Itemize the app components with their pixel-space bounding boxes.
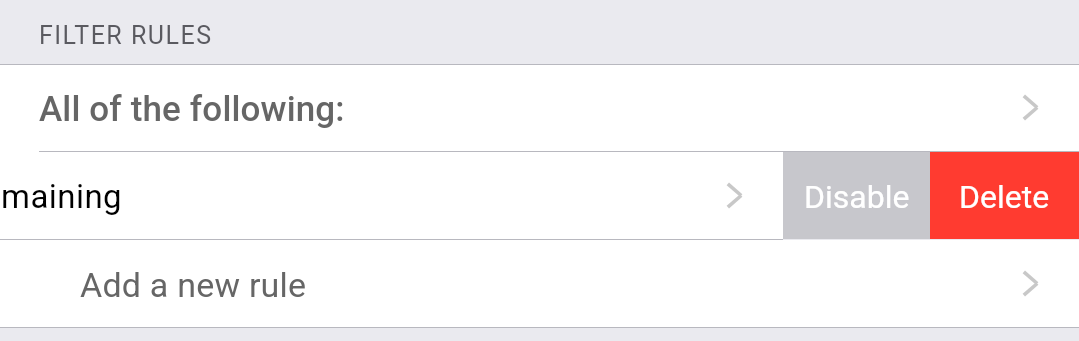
button[interactable]: Add a new rule: [0, 240, 1079, 327]
staticText: maining: [1, 177, 123, 216]
button[interactable]: maining: [0, 152, 783, 239]
staticText: Disable: [804, 178, 910, 216]
button[interactable]: All of the following:: [0, 65, 1079, 151]
staticText: Delete: [959, 178, 1050, 216]
button[interactable]: Delete: [930, 152, 1079, 239]
button[interactable]: Disable: [783, 152, 930, 239]
staticText: FILTER RULES: [39, 21, 213, 50]
other: Edit rule: [726, 182, 743, 209]
other: Open condition list: [1022, 94, 1039, 121]
staticText: All of the following:: [39, 89, 345, 130]
other: Add a new rule: [1022, 270, 1039, 297]
staticText: Add a new rule: [80, 265, 307, 305]
